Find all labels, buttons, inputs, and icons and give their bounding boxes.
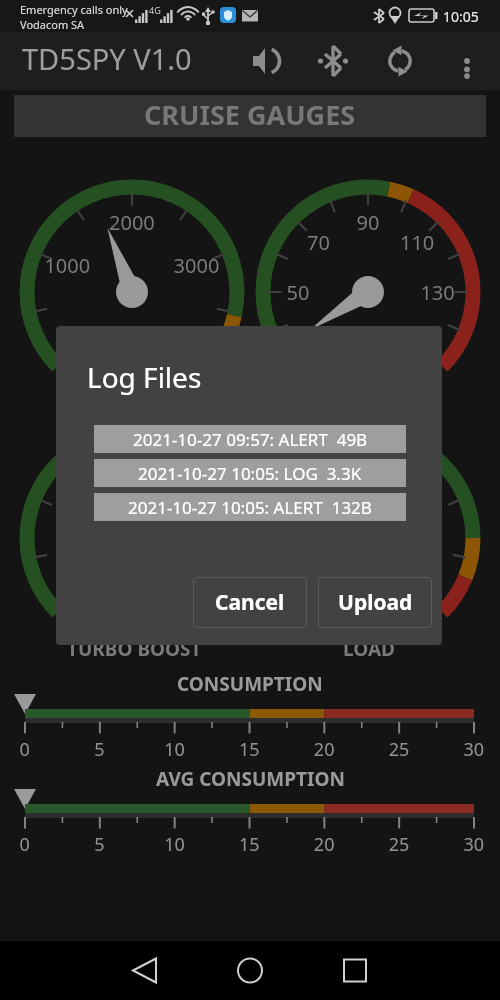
- staticText: Log Files: [87, 358, 202, 396]
- button[interactable]: Upload: [318, 577, 432, 628]
- button[interactable]: 2021-10-27 10:05: LOG 3.3K: [94, 459, 406, 487]
- button[interactable]: Sound: [243, 32, 289, 90]
- staticText: Emergency calls only: [20, 2, 128, 17]
- staticText: 2021-10-27 10:05: LOG 3.3K: [138, 462, 362, 485]
- staticText: Upload: [338, 588, 413, 617]
- staticText: 10:05: [443, 7, 479, 26]
- button[interactable]: CRUISE GAUGES: [14, 95, 486, 137]
- staticText: TD5SPY V1.0: [22, 39, 192, 78]
- staticText: Cancel: [215, 588, 285, 617]
- staticText: TURBO BOOST: [67, 636, 202, 662]
- staticText: CRUISE GAUGES: [144, 96, 356, 133]
- button[interactable]: More options: [444, 32, 490, 90]
- staticText: LOAD: [343, 636, 395, 662]
- button[interactable]: Cancel: [193, 577, 307, 628]
- staticText: 2021-10-27 10:05: ALERT 132B: [128, 496, 372, 519]
- button[interactable]: 2021-10-27 10:05: ALERT 132B: [94, 493, 406, 521]
- button[interactable]: Bluetooth: [310, 32, 356, 90]
- staticText: 4G: [149, 4, 161, 16]
- staticText: Vodacom SA: [20, 17, 85, 32]
- button[interactable]: 2021-10-27 09:57: ALERT 49B: [94, 425, 406, 453]
- button[interactable]: Refresh: [377, 32, 423, 90]
- staticText: 2021-10-27 09:57: ALERT 49B: [133, 428, 368, 451]
- staticText: AVG CONSUMPTION: [156, 766, 345, 792]
- staticText: CONSUMPTION: [177, 671, 323, 697]
